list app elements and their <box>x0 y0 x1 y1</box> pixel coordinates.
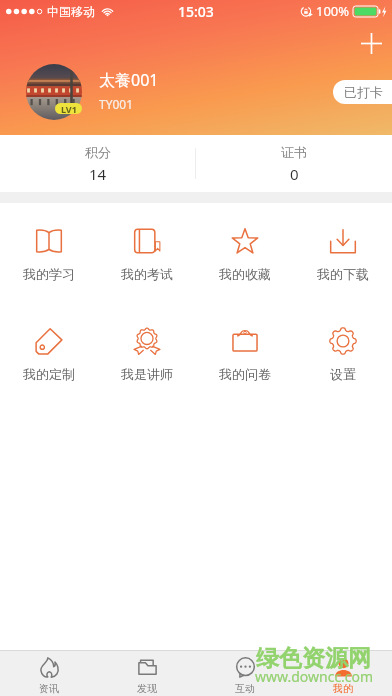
staticText: 我的下载 <box>317 266 369 282</box>
staticText: 证书 <box>281 144 307 160</box>
button[interactable]: 我的学习 <box>0 227 98 282</box>
staticText: 中国移动 <box>47 4 95 19</box>
button[interactable]: 我的下载 <box>294 227 392 282</box>
staticText: 我的收藏 <box>219 266 271 282</box>
staticText: 100% <box>316 2 350 20</box>
staticText: 我的定制 <box>23 366 75 382</box>
staticText: 太養001 <box>99 69 159 91</box>
staticText: www.downcc.com <box>255 667 374 686</box>
button[interactable]: Add <box>354 26 388 60</box>
button[interactable]: 我的定制 <box>0 327 98 382</box>
staticText: 积分 <box>85 144 111 160</box>
button[interactable]: 积分 <box>0 144 195 184</box>
staticText: TY001 <box>99 96 134 112</box>
button[interactable]: 发现 <box>98 651 196 696</box>
staticText: 互动 <box>235 682 255 695</box>
staticText: 14 <box>89 164 107 184</box>
staticText: 0 <box>290 164 299 184</box>
staticText: 我的问卷 <box>219 366 271 382</box>
staticText: 我的 <box>333 682 353 695</box>
staticText: 已打卡 <box>344 84 383 100</box>
staticText: 我是讲师 <box>121 366 173 382</box>
staticText: 绿色资源网 <box>256 644 371 673</box>
button[interactable]: 我的考试 <box>98 227 196 282</box>
button[interactable]: 已打卡 <box>333 80 392 104</box>
button[interactable]: 我是讲师 <box>98 327 196 382</box>
button[interactable]: 资讯 <box>0 651 98 696</box>
button[interactable]: 设置 <box>294 327 392 382</box>
button[interactable]: 互动 <box>196 651 294 696</box>
staticText: 我的学习 <box>23 266 75 282</box>
button[interactable]: 证书 <box>196 144 392 184</box>
staticText: 我的考试 <box>121 266 173 282</box>
staticText: 15:03 <box>178 2 214 21</box>
button[interactable]: 我的 <box>294 651 392 696</box>
staticText: LV1 <box>61 103 77 114</box>
staticText: 资讯 <box>39 682 59 695</box>
staticText: 发现 <box>137 682 157 695</box>
staticText: 设置 <box>330 366 356 382</box>
button[interactable]: 我的问卷 <box>196 327 294 382</box>
button[interactable]: 我的收藏 <box>196 227 294 282</box>
